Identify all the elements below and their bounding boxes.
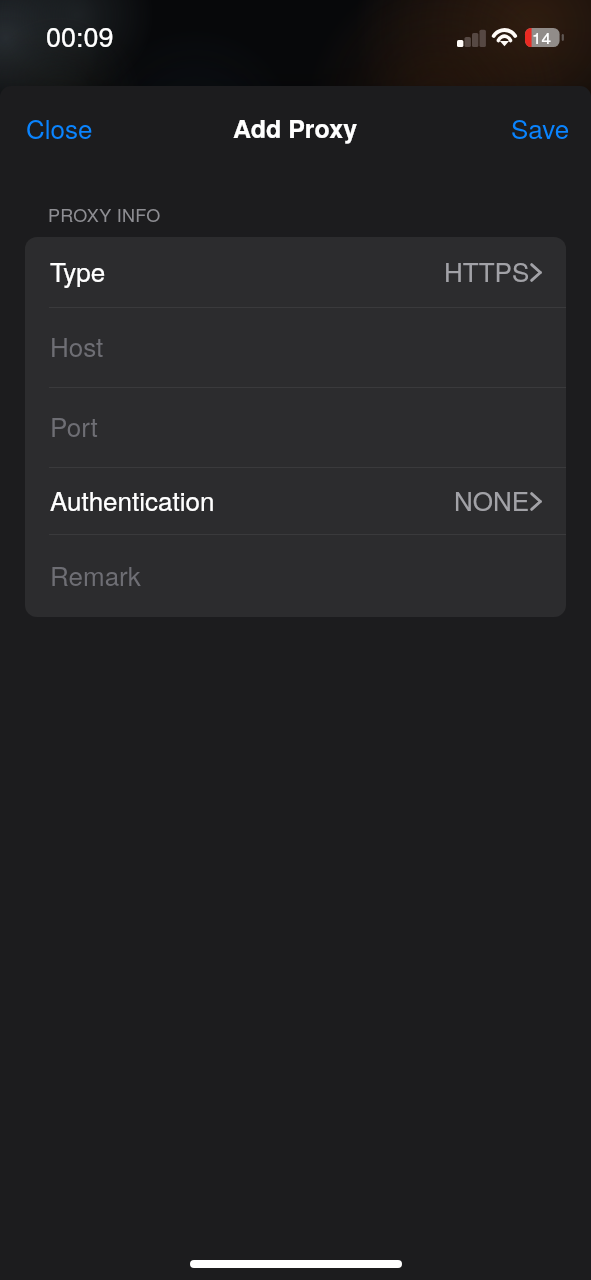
staticText: Host [50,327,104,364]
staticText: Save [511,109,570,146]
button[interactable]: Authentication [25,468,566,534]
button[interactable]: Save [497,100,584,157]
staticText: Authentication [50,481,215,518]
other: Battery 14 percent [525,28,564,47]
button[interactable]: Remark [25,535,566,617]
staticText: 00:09 [46,16,114,55]
other: Cellular signal [457,29,485,47]
staticText: Remark [50,556,141,593]
button[interactable]: Port [25,388,566,467]
staticText: Type [50,252,106,289]
staticText: NONE [454,481,530,518]
staticText: 14 [532,25,551,44]
staticText: Port [50,407,98,444]
button[interactable]: Host [25,308,566,387]
other: Wi-Fi [491,25,518,49]
staticText: Add Proxy [233,110,358,146]
staticText: HTTPS [444,252,530,289]
button[interactable]: Type [25,237,566,307]
button[interactable]: Close [12,100,107,157]
staticText: PROXY INFO [48,201,161,227]
staticText: Close [26,109,93,146]
